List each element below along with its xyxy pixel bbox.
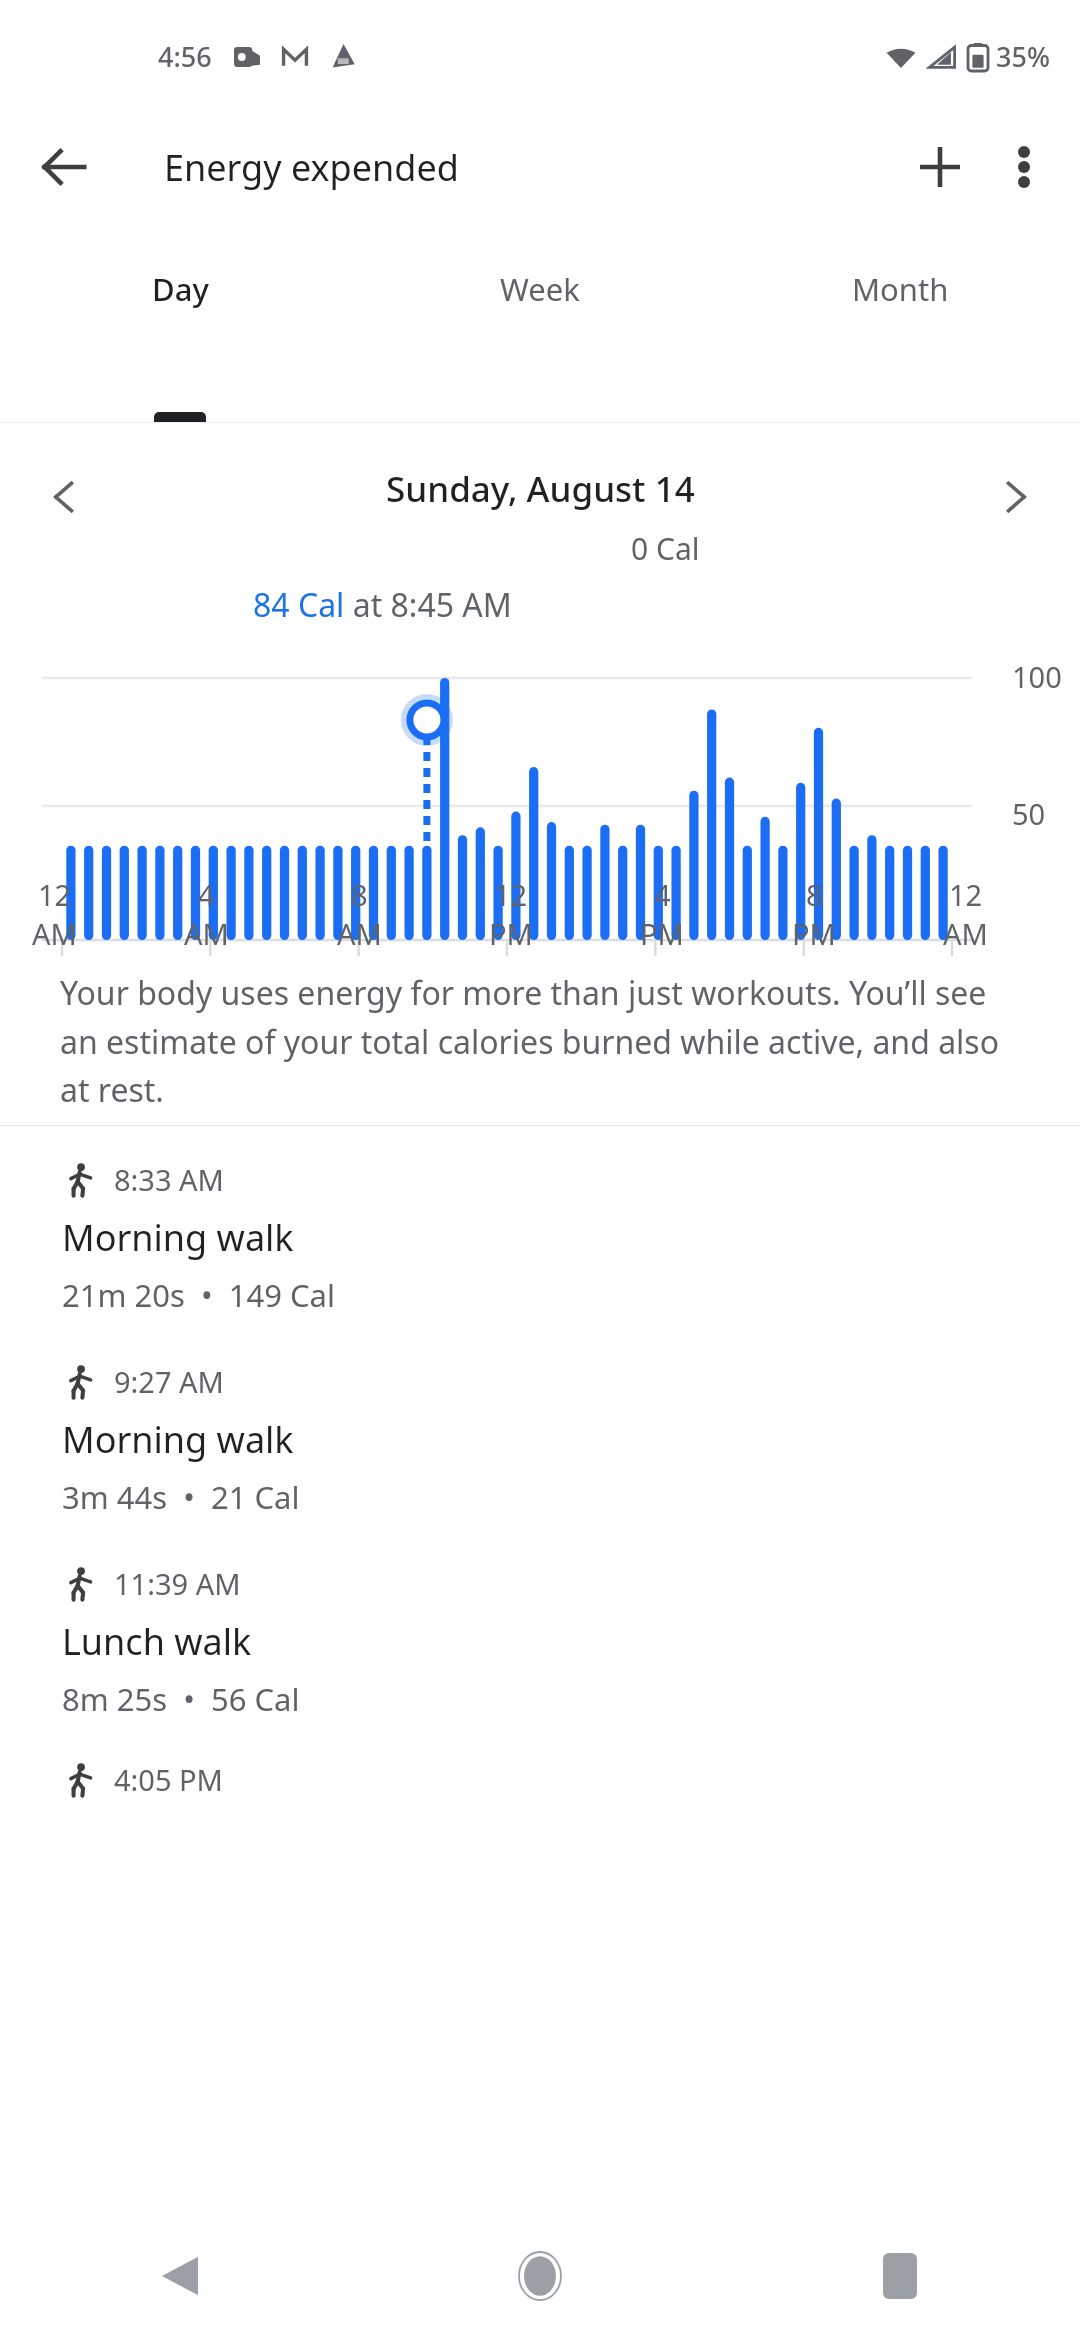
staticText: 11:39 AM: [114, 1564, 241, 1603]
button[interactable]: Home: [360, 2212, 720, 2340]
staticText: PM: [792, 914, 836, 953]
button[interactable]: Next day: [980, 461, 1052, 533]
staticText: Day: [152, 268, 209, 310]
button[interactable]: Add: [898, 125, 982, 209]
staticText: 100: [1012, 657, 1062, 696]
staticText: 8: [806, 875, 823, 914]
button[interactable]: More options: [982, 125, 1066, 209]
staticText: Month: [852, 268, 949, 310]
staticText: 8:33 AM: [114, 1160, 224, 1199]
button[interactable]: 9:27 AM: [0, 1328, 1080, 1530]
staticText: 9:27 AM: [114, 1362, 224, 1401]
button[interactable]: 11:39 AM: [0, 1530, 1080, 1732]
staticText: PM: [489, 914, 533, 953]
button[interactable]: Back: [26, 129, 102, 205]
staticText: 84 Cal at 8:45 AM: [253, 583, 512, 627]
button[interactable]: 84 Cal at 8:45 AM: [180, 561, 585, 649]
staticText: 8: [351, 875, 368, 914]
staticText: 4: [654, 875, 671, 914]
button[interactable]: Month: [720, 222, 1080, 422]
staticText: Morning walk: [62, 1415, 294, 1464]
staticText: Sunday, August 14: [386, 465, 695, 513]
staticText: 4:05 PM: [114, 1760, 223, 1799]
staticText: 12: [949, 875, 983, 914]
button[interactable]: Week: [360, 222, 720, 422]
staticText: Morning walk: [62, 1213, 294, 1262]
staticText: AM: [337, 914, 382, 953]
staticText: Week: [500, 268, 580, 310]
button[interactable]: Previous day: [28, 461, 100, 533]
staticText: 12: [38, 875, 72, 914]
staticText: 4:56: [158, 38, 212, 75]
staticText: 3m 44s • 21 Cal: [62, 1476, 300, 1518]
button[interactable]: 8:33 AM: [0, 1126, 1080, 1328]
staticText: 8m 25s • 56 Cal: [62, 1678, 300, 1720]
button[interactable]: Day: [0, 222, 360, 422]
staticText: 12: [494, 875, 528, 914]
button[interactable]: Recent apps: [720, 2212, 1080, 2340]
staticText: Your body uses energy for more than just…: [60, 971, 1032, 1111]
staticText: 35%: [996, 38, 1050, 75]
staticText: AM: [943, 914, 988, 953]
staticText: Energy expended: [164, 143, 459, 192]
staticText: Lunch walk: [62, 1617, 252, 1666]
staticText: AM: [32, 914, 77, 953]
staticText: 50: [1012, 794, 1046, 833]
staticText: 4: [198, 875, 215, 914]
staticText: 21m 20s • 149 Cal: [62, 1274, 335, 1316]
staticText: PM: [640, 914, 684, 953]
staticText: AM: [184, 914, 229, 953]
staticText: 0 Cal: [631, 528, 700, 569]
button[interactable]: Back: [0, 2212, 360, 2340]
